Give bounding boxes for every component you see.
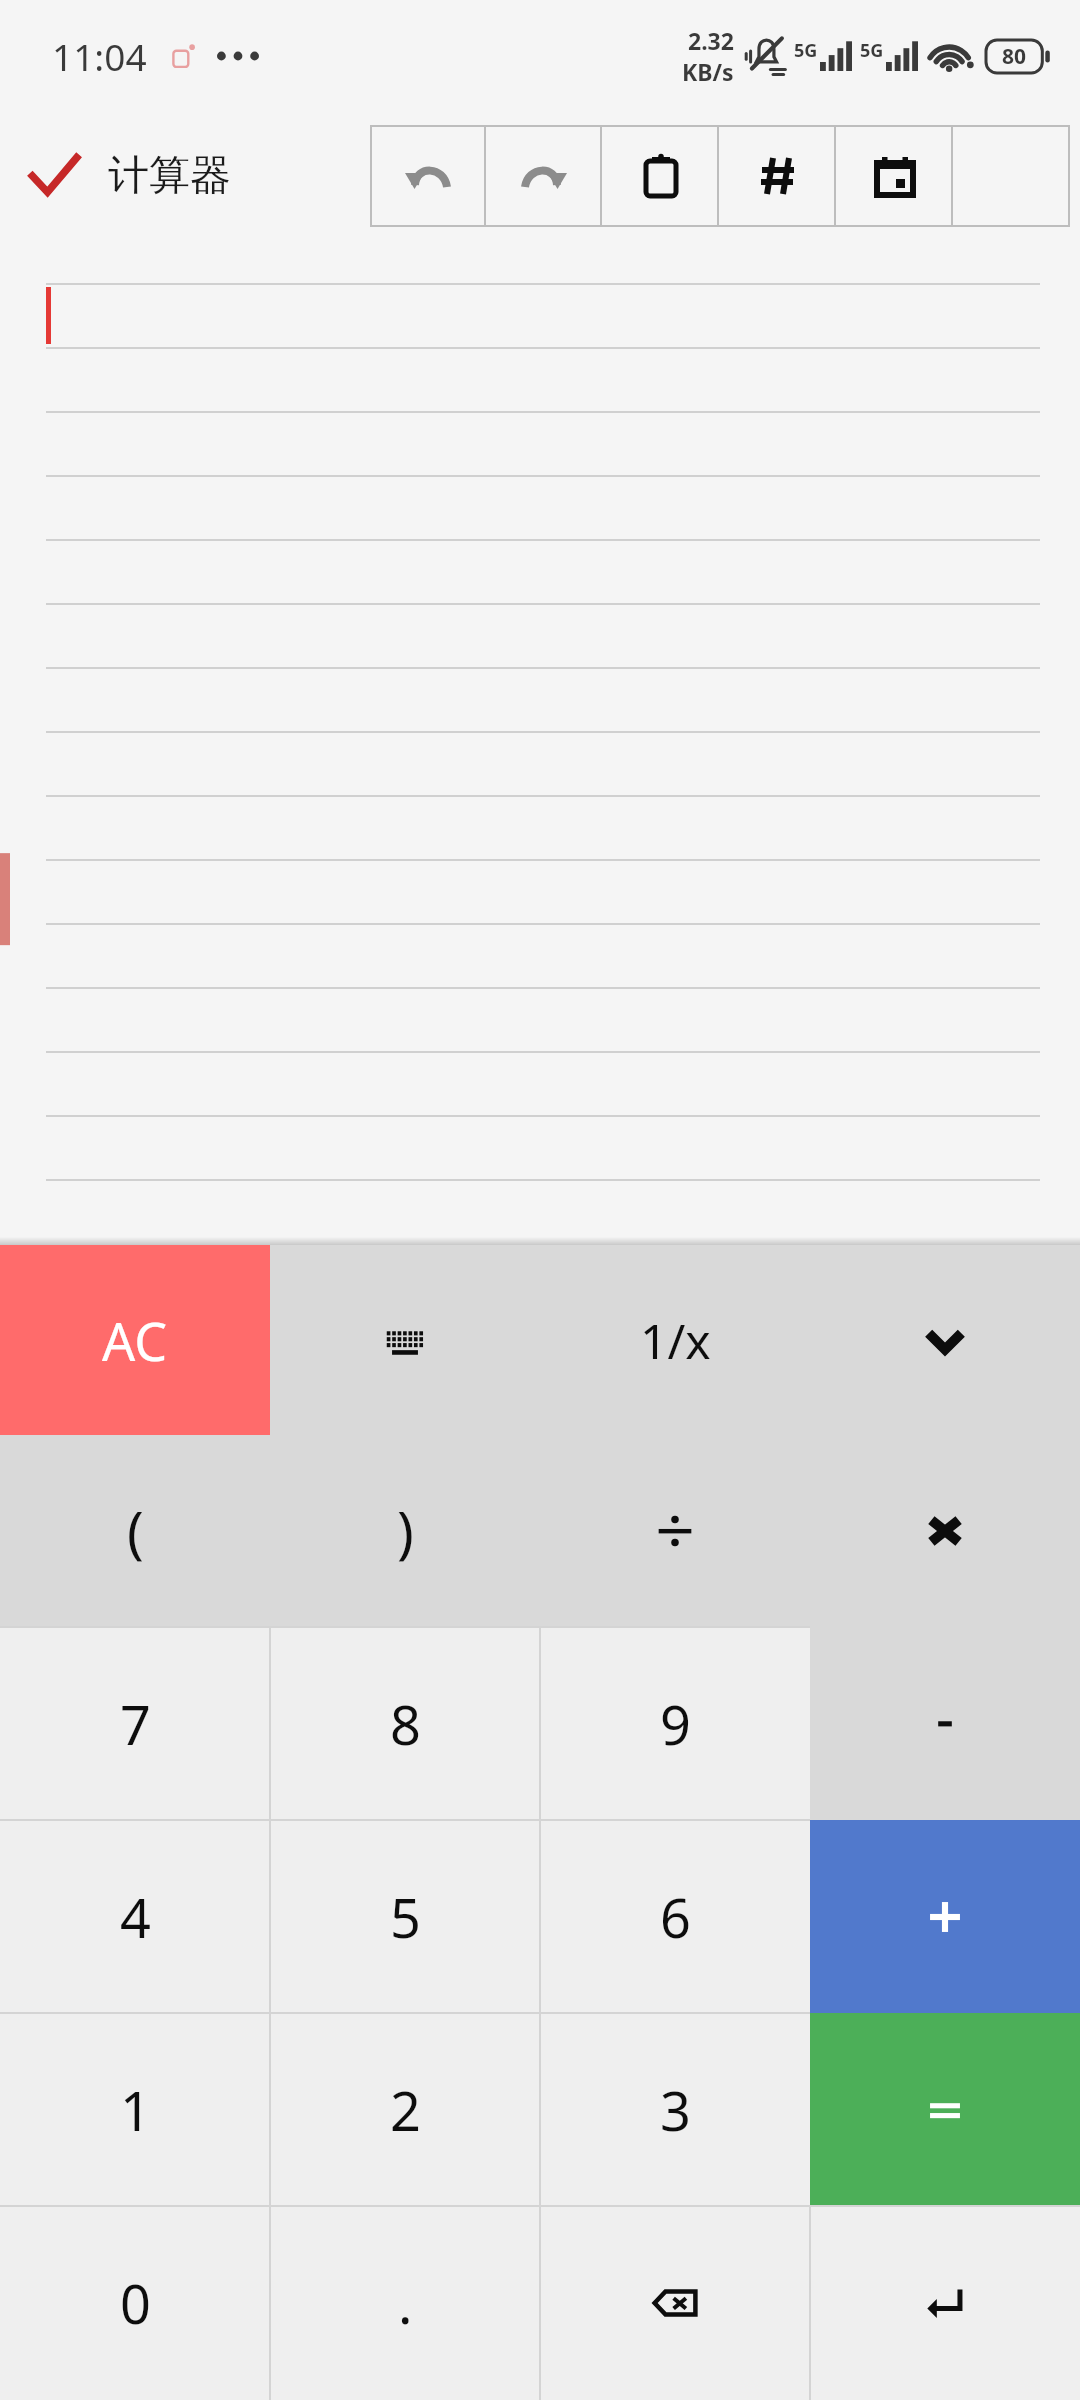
button[interactable]: 6: [540, 1820, 810, 2013]
button[interactable]: Insert number: [719, 125, 836, 227]
staticText: 4: [120, 1880, 151, 1954]
staticText: 80: [1002, 42, 1027, 71]
button[interactable]: 1/x: [540, 1245, 810, 1435]
staticText: 1/x: [640, 1308, 711, 1373]
button[interactable]: Plus: [810, 1820, 1080, 2013]
button[interactable]: 2: [270, 2013, 540, 2206]
button[interactable]: 8: [270, 1627, 540, 1820]
button[interactable]: 1: [0, 2013, 270, 2206]
staticText: 11:04: [52, 31, 147, 81]
button[interactable]: .: [270, 2206, 540, 2400]
button[interactable]: Multiply: [810, 1435, 1080, 1627]
staticText: 2: [390, 2073, 421, 2147]
staticText: 1: [120, 2073, 151, 2147]
staticText: KB/s: [682, 56, 734, 87]
button[interactable]: 0: [0, 2206, 270, 2400]
button[interactable]: [0, 240, 1080, 1237]
button[interactable]: (: [0, 1435, 270, 1627]
button[interactable]: AC: [0, 1245, 270, 1435]
button[interactable]: Paste: [602, 125, 719, 227]
staticText: 8: [390, 1687, 421, 1761]
staticText: 计算器: [108, 150, 231, 202]
button[interactable]: 7: [0, 1627, 270, 1820]
button[interactable]: Minus: [810, 1627, 1080, 1820]
button[interactable]: Backspace: [540, 2206, 810, 2400]
button[interactable]: More options: [953, 125, 1070, 227]
button[interactable]: Enter: [810, 2206, 1080, 2400]
button[interactable]: ): [270, 1435, 540, 1627]
staticText: ): [397, 1493, 414, 1569]
button[interactable]: 9: [540, 1627, 810, 1820]
button[interactable]: 3: [540, 2013, 810, 2206]
staticText: .: [398, 2266, 413, 2340]
staticText: 5G: [860, 38, 884, 63]
staticText: 9: [660, 1687, 691, 1761]
button[interactable]: 5: [270, 1820, 540, 2013]
button[interactable]: Undo: [370, 125, 486, 227]
staticText: 5G: [794, 38, 818, 63]
button[interactable]: 4: [0, 1820, 270, 2013]
button[interactable]: Equals: [810, 2013, 1080, 2206]
staticText: 0: [120, 2266, 151, 2340]
staticText: 2.32: [688, 25, 734, 56]
staticText: 7: [120, 1687, 151, 1761]
staticText: 5: [390, 1880, 421, 1954]
staticText: AC: [102, 1305, 168, 1376]
staticText: 3: [660, 2073, 691, 2147]
button[interactable]: Keyboard: [270, 1245, 540, 1435]
staticText: (: [127, 1493, 144, 1569]
button[interactable]: Collapse: [810, 1245, 1080, 1435]
button[interactable]: Divide: [540, 1435, 810, 1627]
staticText: 6: [660, 1880, 691, 1954]
button[interactable]: Insert date: [836, 125, 953, 227]
button[interactable]: Confirm: [0, 112, 108, 240]
button[interactable]: Redo: [486, 125, 602, 227]
